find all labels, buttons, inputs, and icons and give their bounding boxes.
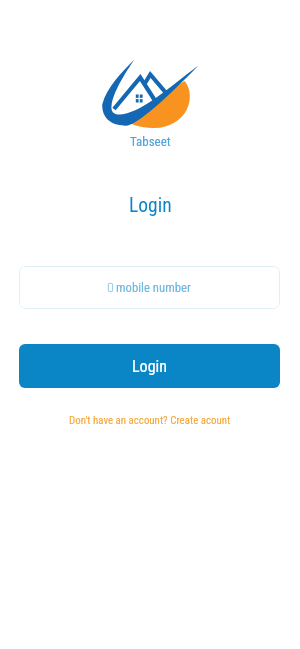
button[interactable]: Login (19, 344, 280, 388)
staticText: Tabseet (130, 134, 171, 149)
button[interactable]: mobile number (19, 266, 280, 309)
staticText: Login (132, 357, 167, 376)
button[interactable]: Don't have an account? Create acount (69, 414, 231, 427)
staticText: Don't have an account? Create acount (69, 414, 231, 427)
staticText: mobile number (116, 280, 191, 295)
staticText: Login (129, 194, 172, 217)
